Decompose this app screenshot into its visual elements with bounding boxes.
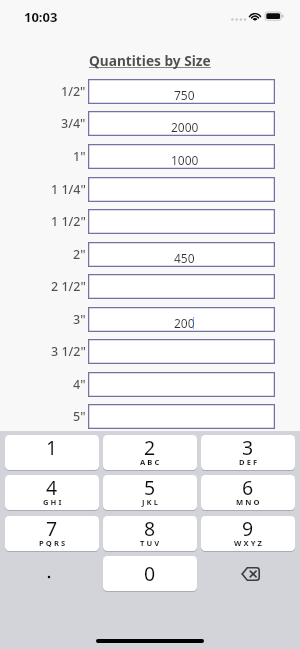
staticText: ABC [140, 457, 162, 467]
staticText: 1" [73, 148, 86, 165]
button[interactable]: 200 [88, 307, 275, 332]
staticText: DEF [239, 457, 260, 467]
button[interactable]: 450 [88, 242, 275, 267]
staticText: 1 1/2" [51, 213, 86, 230]
button[interactable]: 2 [103, 435, 197, 470]
staticText: 200 [174, 315, 195, 331]
staticText: 3 1/2" [51, 343, 86, 360]
button[interactable]: 8 [103, 516, 197, 551]
button[interactable]: Backspace [201, 556, 295, 591]
staticText: 1 [46, 435, 58, 461]
button[interactable]: 0 [103, 556, 197, 591]
staticText: 5" [73, 408, 86, 425]
staticText: 6 [242, 475, 254, 501]
button[interactable]: 1000 [88, 144, 275, 169]
button[interactable] [88, 372, 275, 397]
staticText: 4 [46, 475, 58, 501]
button[interactable]: 2000 [88, 111, 275, 136]
button[interactable] [88, 404, 275, 429]
staticText: 450 [174, 250, 195, 266]
button[interactable]: 6 [201, 475, 295, 510]
staticText: 750 [174, 87, 195, 103]
staticText: 5 [144, 475, 156, 501]
staticText: 1000 [171, 152, 199, 168]
button[interactable]: 5 [103, 475, 197, 510]
button[interactable]: 4 [5, 475, 99, 510]
staticText: 2 [144, 435, 156, 461]
staticText: 2 1/2" [51, 278, 86, 295]
button[interactable] [88, 209, 275, 234]
staticText: MNO [236, 497, 262, 507]
staticText: 0 [144, 560, 156, 587]
button[interactable]: 3 [201, 435, 295, 470]
staticText: 4" [73, 376, 86, 393]
staticText: 8 [144, 516, 156, 542]
button[interactable]: 9 [201, 516, 295, 551]
staticText: 9 [242, 516, 254, 542]
button[interactable]: 750 [88, 79, 275, 104]
staticText: WXYZ [234, 538, 264, 548]
staticText: GHI [43, 497, 64, 507]
staticText: 3 [242, 435, 254, 461]
button[interactable] [88, 274, 275, 299]
staticText: JKL [142, 497, 161, 507]
staticText: 7 [46, 516, 58, 542]
staticText: 2000 [171, 119, 199, 135]
staticText: Quantities by Size [89, 51, 211, 70]
button[interactable] [88, 177, 275, 202]
button[interactable]: 7 [5, 516, 99, 551]
staticText: 1 1/4" [51, 181, 86, 198]
staticText: 10:03 [24, 8, 58, 26]
staticText: 3/4" [61, 115, 86, 132]
staticText: 3" [73, 311, 86, 328]
staticText: 2" [73, 246, 86, 263]
staticText: 1/2" [61, 83, 86, 100]
button[interactable]: 1 [5, 435, 99, 470]
button[interactable]: Decimal point [5, 556, 99, 591]
staticText: PQRS [39, 538, 68, 548]
staticText: TUV [140, 538, 162, 548]
button[interactable] [88, 339, 275, 364]
